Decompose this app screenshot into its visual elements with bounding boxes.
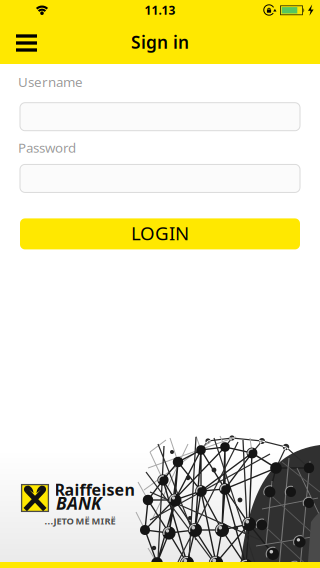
staticText: LOGIN [131, 220, 189, 245]
button[interactable]: Username text field [20, 103, 300, 131]
staticText: Sign in [131, 30, 189, 53]
staticText: ...JETO MË MIRË [44, 515, 115, 527]
staticText: 11.13 [144, 2, 175, 18]
staticText: Username [18, 73, 83, 91]
button[interactable]: Password text field [20, 164, 300, 192]
staticText: BANK [56, 491, 102, 514]
staticText: Raiffeisen [54, 479, 134, 500]
staticText: Password [18, 139, 76, 156]
button[interactable]: LOGIN [20, 218, 300, 249]
button[interactable]: Menu [0, 20, 47, 64]
